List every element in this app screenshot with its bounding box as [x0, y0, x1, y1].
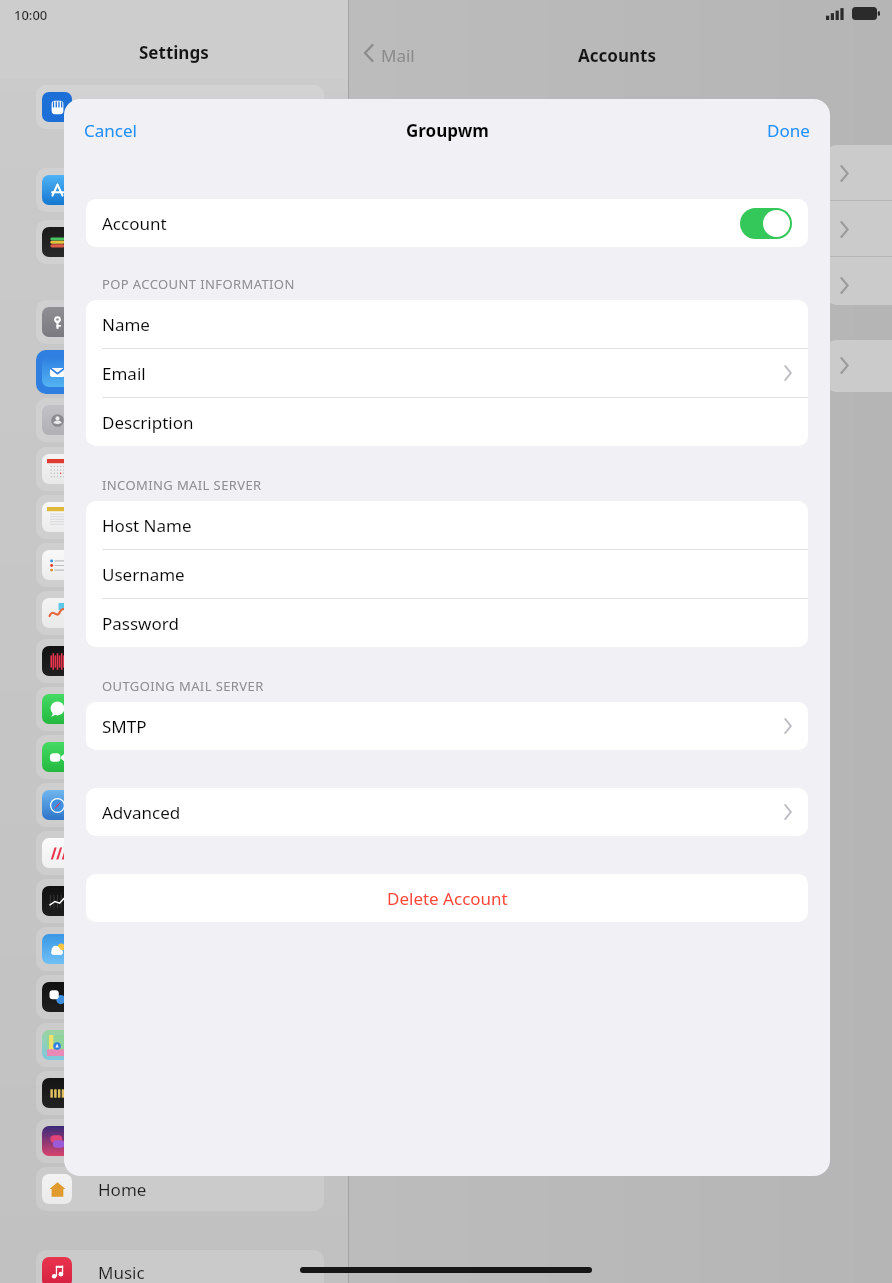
- staticText: Email: [102, 362, 146, 385]
- staticText: POP ACCOUNT INFORMATION: [102, 275, 295, 293]
- button[interactable]: Delete Account: [86, 874, 808, 922]
- staticText: Advanced: [102, 801, 181, 824]
- button[interactable]: [36, 1071, 324, 1115]
- staticText: Username: [102, 563, 185, 586]
- staticText: Host Name: [102, 514, 192, 537]
- staticText: Accounts: [578, 44, 656, 67]
- button[interactable]: Description: [86, 398, 808, 446]
- staticText: Home: [98, 1178, 147, 1201]
- button[interactable]: Home: [36, 1167, 324, 1211]
- staticText: Music: [98, 1261, 145, 1283]
- button[interactable]: [36, 1023, 324, 1067]
- button[interactable]: Username: [86, 550, 808, 598]
- staticText: INCOMING MAIL SERVER: [102, 476, 262, 494]
- button[interactable]: [36, 831, 324, 875]
- button[interactable]: Privacy & Security: [36, 85, 324, 129]
- staticText: Settings: [139, 41, 209, 64]
- staticText: Privacy & Security: [98, 96, 240, 119]
- button[interactable]: Name: [86, 300, 808, 348]
- button[interactable]: [36, 783, 324, 827]
- button[interactable]: [36, 220, 324, 264]
- staticText: OUTGOING MAIL SERVER: [102, 677, 264, 695]
- button[interactable]: [36, 639, 324, 683]
- button[interactable]: [36, 735, 324, 779]
- button[interactable]: Account: [86, 199, 808, 247]
- staticText: Delete Account: [387, 887, 508, 910]
- staticText: 10:00: [14, 6, 48, 24]
- button[interactable]: [36, 495, 324, 539]
- button[interactable]: Host Name: [86, 501, 808, 549]
- button[interactable]: Account toggle, on: [740, 208, 792, 239]
- button[interactable]: Password: [86, 599, 808, 647]
- button[interactable]: [36, 879, 324, 923]
- staticText: Password: [102, 612, 179, 635]
- button[interactable]: [36, 168, 324, 212]
- staticText: Cancel: [84, 119, 137, 142]
- button[interactable]: [36, 591, 324, 635]
- staticText: Description: [102, 411, 194, 434]
- button[interactable]: [36, 447, 324, 491]
- staticText: SMTP: [102, 715, 147, 738]
- button[interactable]: Done: [753, 111, 824, 150]
- button[interactable]: [36, 927, 324, 971]
- button[interactable]: Music: [36, 1250, 324, 1283]
- button[interactable]: SMTP: [86, 702, 808, 750]
- button[interactable]: [36, 398, 324, 442]
- button[interactable]: Email: [86, 349, 808, 397]
- button[interactable]: [36, 687, 324, 731]
- staticText: Name: [102, 313, 150, 336]
- button[interactable]: Advanced: [86, 788, 808, 836]
- staticText: Account: [102, 212, 167, 235]
- button[interactable]: [36, 300, 324, 344]
- staticText: Groupwm: [406, 119, 489, 142]
- button[interactable]: [36, 543, 324, 587]
- button[interactable]: [36, 1119, 324, 1163]
- button[interactable]: Cancel: [70, 111, 151, 150]
- staticText: Done: [767, 119, 810, 142]
- staticText: Mail: [381, 44, 415, 67]
- button[interactable]: [36, 350, 324, 394]
- button[interactable]: [36, 975, 324, 1019]
